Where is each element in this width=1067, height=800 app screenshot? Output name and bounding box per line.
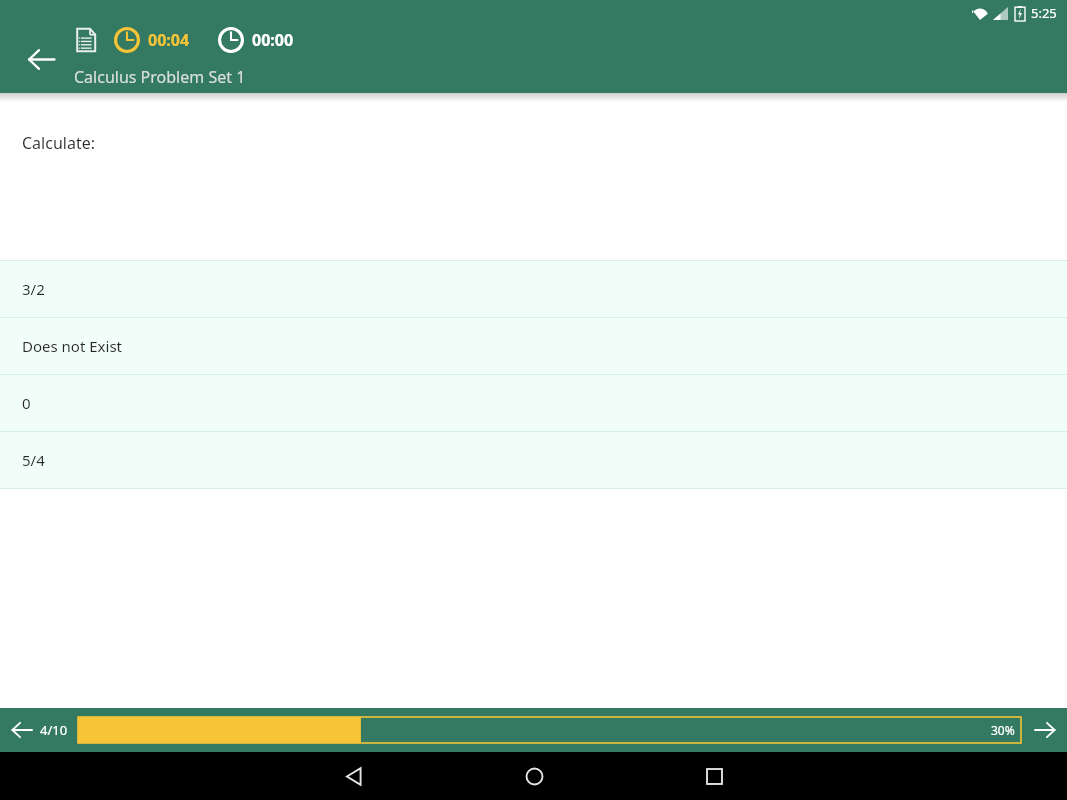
button[interactable]: Next	[1027, 712, 1063, 748]
staticText: 30%	[991, 722, 1015, 738]
button[interactable]: 3/2	[0, 261, 1067, 317]
staticText: 00:00	[252, 29, 294, 51]
staticText: Calculus Problem Set 1	[74, 66, 246, 88]
button[interactable]: Back	[20, 38, 62, 80]
button[interactable]: Home	[444, 752, 624, 800]
staticText: 4/10	[40, 721, 68, 739]
button[interactable]: Back	[264, 752, 444, 800]
staticText: 5:25	[1031, 4, 1057, 22]
staticText: Does not Exist	[22, 336, 122, 356]
staticText: 3/2	[22, 279, 45, 299]
staticText: 00:04	[148, 29, 190, 51]
staticText: Calculate:	[22, 132, 95, 154]
button[interactable]: Previous	[4, 712, 40, 748]
staticText: 5/4	[22, 450, 45, 470]
button[interactable]: 5/4	[0, 432, 1067, 488]
button[interactable]: Recents	[624, 752, 804, 800]
staticText: 0	[22, 393, 31, 413]
button[interactable]: 0	[0, 375, 1067, 431]
button[interactable]: Does not Exist	[0, 318, 1067, 374]
